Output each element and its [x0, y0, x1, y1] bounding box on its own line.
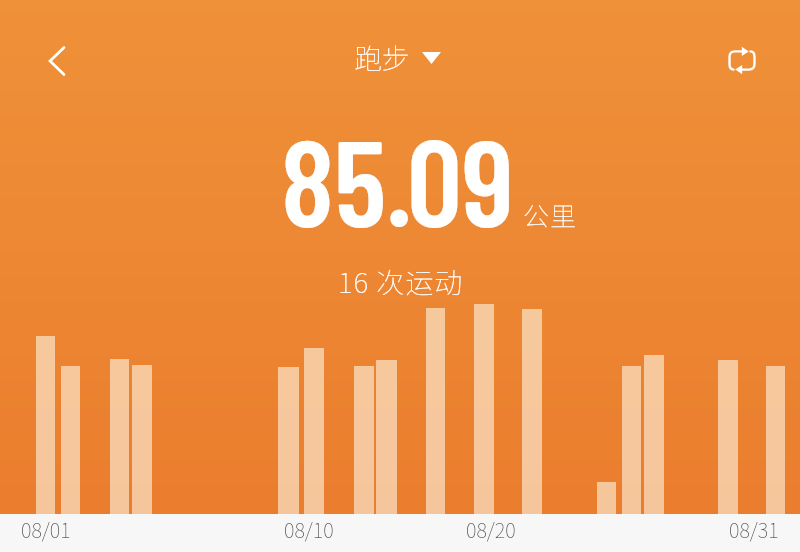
staticText: 08/20: [466, 515, 516, 543]
staticText: 08/31: [729, 515, 779, 543]
staticText: 公里: [523, 196, 578, 234]
staticText: 85.09: [281, 105, 514, 251]
staticText: 跑步: [354, 37, 411, 78]
staticText: 08/10: [284, 515, 334, 543]
button[interactable]: [33, 37, 81, 85]
button[interactable]: [718, 38, 766, 86]
button[interactable]: 跑步: [354, 37, 441, 78]
staticText: 16 次运动: [338, 261, 464, 302]
staticText: 08/01: [21, 515, 71, 543]
